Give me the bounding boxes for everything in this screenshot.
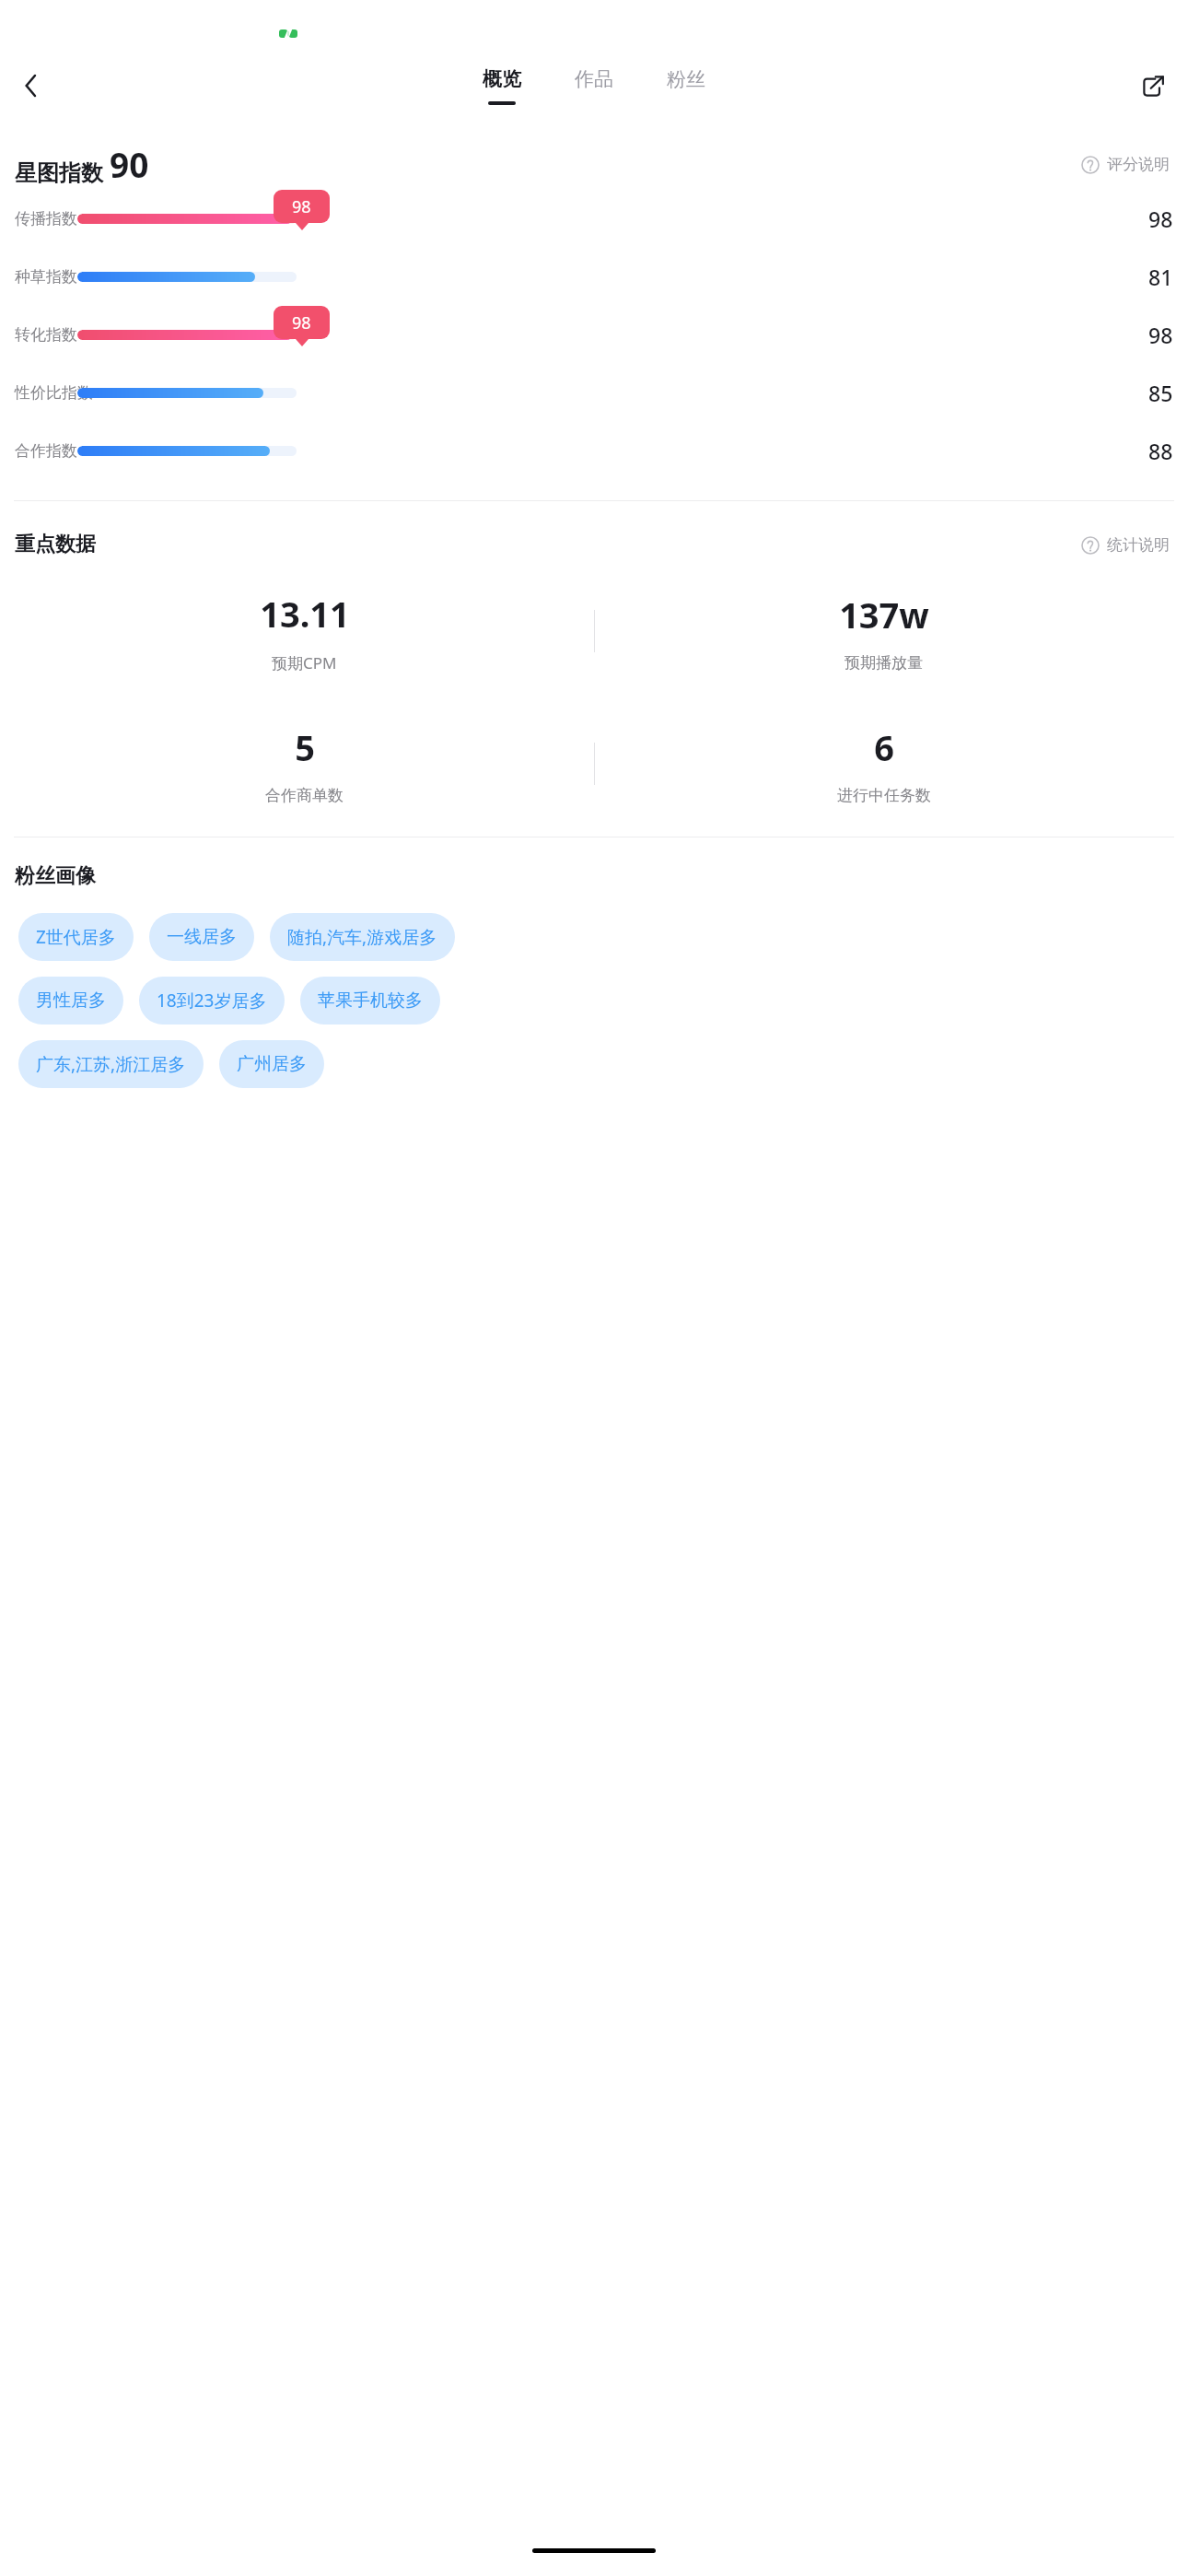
staticText: 概览 xyxy=(483,67,521,91)
staticText: 重点数据 xyxy=(15,532,96,557)
staticText: 合作指数 xyxy=(15,441,77,461)
button[interactable]: 137w xyxy=(594,577,1173,685)
staticText: 传播指数 xyxy=(15,209,77,228)
staticText: 种草指数 xyxy=(15,267,77,287)
staticText: 性价比指数 xyxy=(15,383,93,403)
staticText: 85 xyxy=(1148,379,1173,407)
button[interactable]: 统计说明 xyxy=(1077,532,1173,558)
button[interactable]: 男性居多 xyxy=(18,977,123,1025)
staticText: 13.11 xyxy=(260,590,350,638)
staticText: 88 xyxy=(1148,437,1173,465)
staticText: 预期播放量 xyxy=(844,653,923,673)
staticText: 98 xyxy=(1148,205,1173,233)
staticText: 一线居多 xyxy=(167,926,237,948)
staticText: 苹果手机较多 xyxy=(318,989,423,1012)
staticText: 作品 xyxy=(575,67,613,91)
button[interactable]: 6 xyxy=(594,709,1173,818)
staticText: 转化指数 xyxy=(15,325,77,345)
button[interactable]: 13.11 xyxy=(15,577,594,685)
button[interactable]: 18到23岁居多 xyxy=(139,977,285,1025)
button[interactable]: 评分说明 xyxy=(1077,151,1173,178)
staticText: 星图指数 xyxy=(15,159,103,187)
button[interactable]: 随拍,汽车,游戏居多 xyxy=(270,913,455,961)
staticText: 广州居多 xyxy=(237,1053,307,1075)
staticText: 137w xyxy=(839,591,929,638)
staticText: 90 xyxy=(110,141,149,187)
staticText: 广东,江苏,浙江居多 xyxy=(36,1052,186,1076)
button[interactable]: 粉丝 xyxy=(658,64,715,109)
staticText: 男性居多 xyxy=(36,989,106,1012)
button[interactable]: 5 xyxy=(15,709,594,818)
staticText: 粉丝画像 xyxy=(15,863,96,889)
staticText: 随拍,汽车,游戏居多 xyxy=(287,925,437,949)
staticText: 6 xyxy=(874,723,894,771)
button[interactable]: 一线居多 xyxy=(149,913,254,961)
button[interactable]: 概览 xyxy=(473,64,530,109)
button[interactable]: 作品 xyxy=(565,64,623,109)
button[interactable]: Back xyxy=(7,62,55,110)
button[interactable]: 广东,江苏,浙江居多 xyxy=(18,1040,204,1088)
staticText: 81 xyxy=(1148,263,1173,291)
staticText: 5 xyxy=(295,723,315,771)
staticText: 进行中任务数 xyxy=(837,786,931,805)
staticText: 评分说明 xyxy=(1107,155,1170,174)
staticText: 统计说明 xyxy=(1107,535,1170,555)
staticText: 98 xyxy=(1148,321,1173,349)
staticText: 合作商单数 xyxy=(265,786,344,805)
staticText: 98 xyxy=(292,311,311,334)
staticText: 18到23岁居多 xyxy=(157,989,267,1013)
staticText: Z世代居多 xyxy=(36,925,116,949)
button[interactable]: 广州居多 xyxy=(219,1040,324,1088)
button[interactable]: 苹果手机较多 xyxy=(300,977,440,1025)
staticText: 98 xyxy=(292,195,311,218)
button[interactable]: Z世代居多 xyxy=(18,913,134,961)
button[interactable]: Share xyxy=(1129,62,1177,110)
staticText: 粉丝 xyxy=(667,67,705,91)
staticText: 预期CPM xyxy=(272,652,337,673)
